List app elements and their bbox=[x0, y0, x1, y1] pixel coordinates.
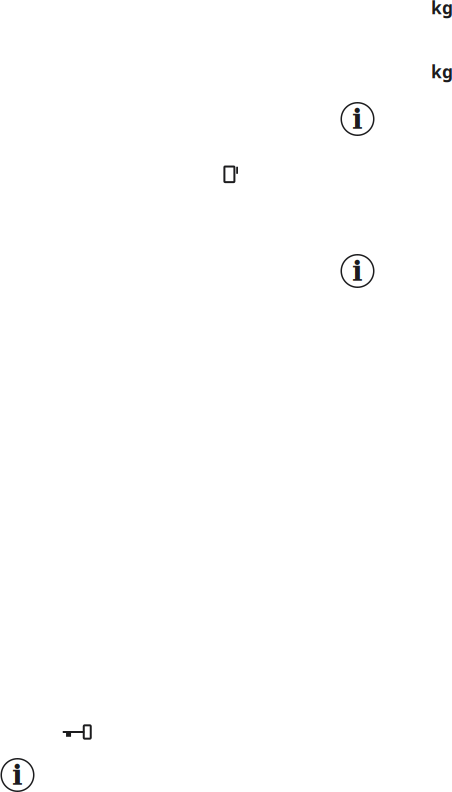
staticText: kg bbox=[431, 60, 452, 83]
button[interactable]: About weight bbox=[340, 102, 374, 136]
staticText: kg bbox=[431, 0, 452, 19]
button[interactable]: Information bbox=[0, 758, 34, 792]
staticText: i bbox=[352, 255, 363, 287]
button[interactable]: About goal weight bbox=[340, 254, 374, 288]
staticText: i bbox=[12, 759, 23, 791]
staticText: i bbox=[352, 103, 363, 135]
